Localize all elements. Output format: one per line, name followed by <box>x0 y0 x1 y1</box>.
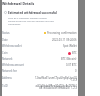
other: Information <box>4 11 7 14</box>
staticText: Status <box>2 31 10 35</box>
staticText: a4f2d9bde8f8ee90d70bc8a7f78b1 d81e304bcb… <box>35 84 77 90</box>
button[interactable]: Status <box>2 31 77 35</box>
button[interactable]: Withdraw wallet <box>2 44 77 48</box>
staticText: Please note that you will receive your f… <box>8 19 54 22</box>
staticText: 0 <box>75 69 77 73</box>
button[interactable]: Address <box>2 76 77 82</box>
button[interactable]: Withdraw amount <box>2 63 77 67</box>
button[interactable]: Coin <box>2 51 77 55</box>
staticText: Coin <box>2 51 8 55</box>
staticText: Spot Wallet <box>63 44 77 48</box>
button[interactable]: Network fee <box>2 69 77 73</box>
button[interactable]: TxID <box>2 84 77 90</box>
staticText: Network fee <box>2 69 17 73</box>
staticText: With BTC sufficient liquidity supply. <box>8 16 48 19</box>
staticText: BTC (Bitcoin) <box>61 57 77 61</box>
staticText: TxID <box>2 84 8 88</box>
staticText: Withdrawal Details <box>2 1 35 6</box>
staticText: Withdraw wallet <box>2 44 22 48</box>
button[interactable]: Network <box>2 57 77 61</box>
staticText: Withdraw amount <box>2 63 24 67</box>
staticText: 12tzvRkaE1uvmCTpuGhyBpUpq1Q 1-2-3 <box>34 76 77 82</box>
staticText: Network <box>2 57 13 61</box>
staticText: Processing confirmation <box>47 31 77 35</box>
staticText: Date <box>2 38 8 42</box>
button[interactable]: Date <box>2 38 77 42</box>
staticText: 2022-03-11 09:24:06 <box>52 38 77 42</box>
staticText: BTC <box>72 51 77 55</box>
staticText: Address <box>2 76 12 80</box>
staticText: completely. <box>8 22 21 25</box>
staticText: Estimated withdrawal successful <box>8 11 57 15</box>
staticText: 0.07 BTC <box>66 63 77 67</box>
